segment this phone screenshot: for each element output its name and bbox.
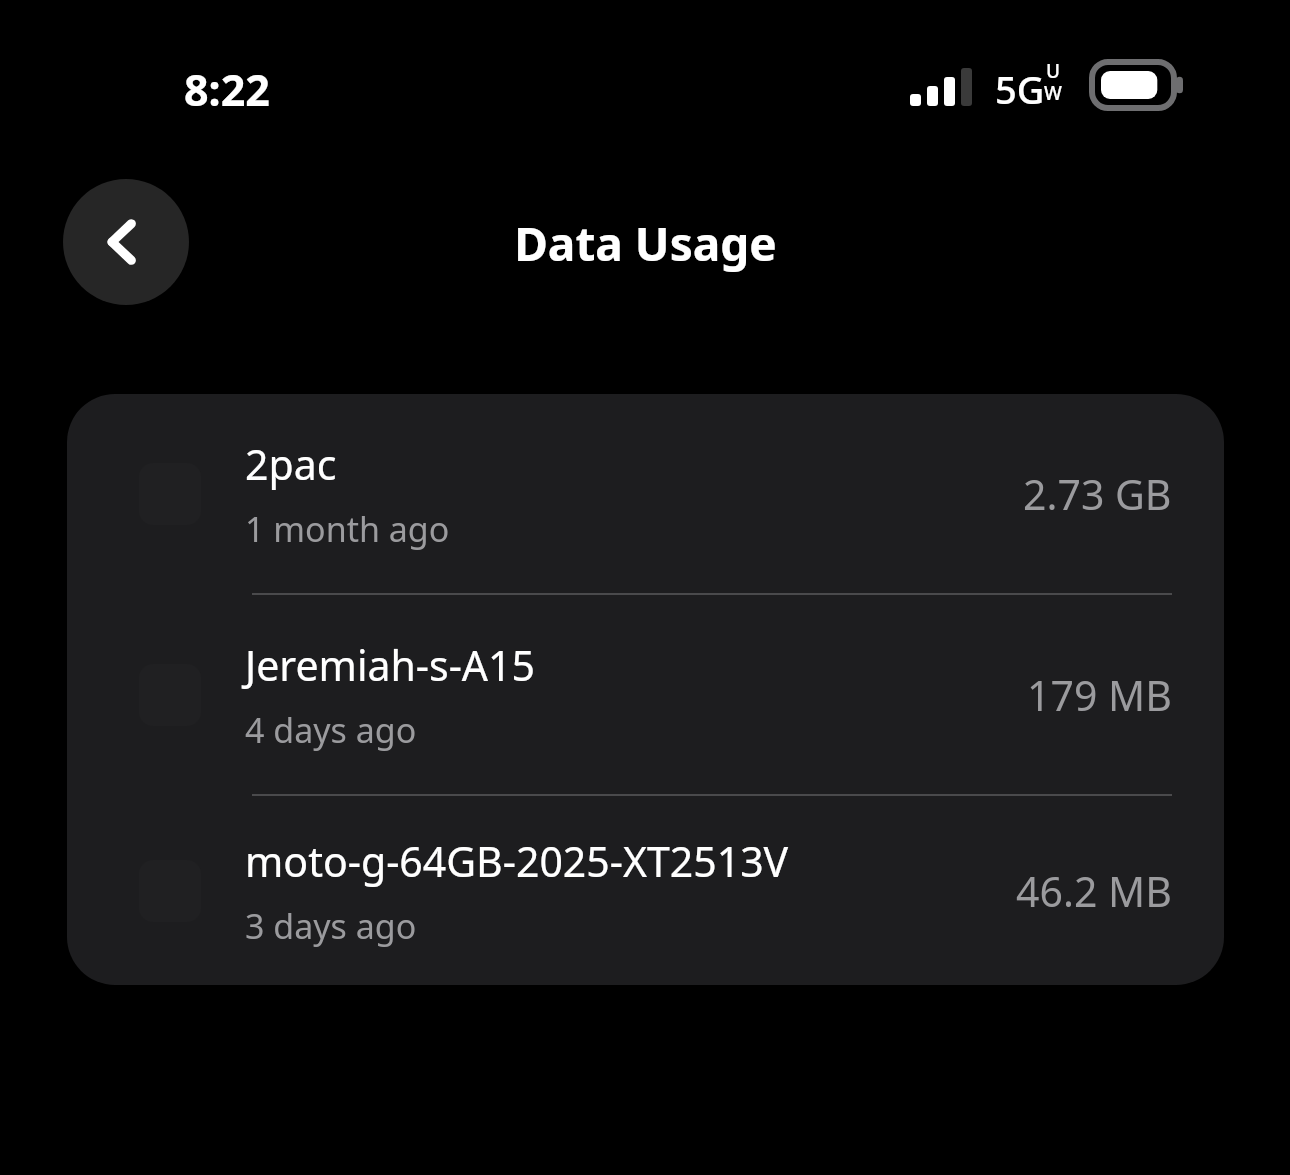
staticText: 4 days ago <box>245 707 417 753</box>
staticText: 46.2 MB <box>1016 863 1172 919</box>
staticText: 8:22 <box>184 60 270 119</box>
staticText: Data Usage <box>514 212 777 275</box>
staticText: 179 MB <box>1027 667 1172 723</box>
button[interactable]: 2pac <box>67 394 1224 593</box>
staticText: U <box>1046 58 1061 84</box>
staticText: W <box>1044 80 1062 106</box>
staticText: 1 month ago <box>245 506 450 552</box>
button[interactable]: moto-g-64GB-2025-XT2513V <box>67 796 1224 985</box>
staticText: 2.73 GB <box>1023 466 1172 522</box>
staticText: moto-g-64GB-2025-XT2513V <box>245 833 789 889</box>
button[interactable]: Back <box>63 179 189 305</box>
staticText: Jeremiah-s-A15 <box>245 637 535 693</box>
staticText: 5G <box>995 63 1045 115</box>
staticText: 3 days ago <box>245 903 417 949</box>
button[interactable]: Jeremiah-s-A15 <box>67 595 1224 794</box>
staticText: 2pac <box>245 436 337 492</box>
